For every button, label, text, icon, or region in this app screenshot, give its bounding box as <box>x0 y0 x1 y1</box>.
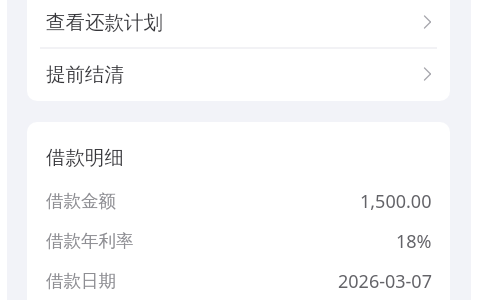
other: 查看还款计划 <box>423 15 431 29</box>
staticText: 提前结清 <box>46 62 124 87</box>
staticText: 借款金额 <box>46 190 116 212</box>
staticText: 18% <box>396 229 432 254</box>
other: 提前结清 <box>423 67 431 81</box>
staticText: 借款明细 <box>46 145 124 170</box>
button[interactable]: 提前结清 <box>27 49 450 99</box>
staticText: 2026-03-07 <box>338 269 432 294</box>
staticText: 1,500.00 <box>360 189 432 214</box>
staticText: 借款年利率 <box>46 230 134 252</box>
button[interactable]: 查看还款计划 <box>27 0 450 47</box>
staticText: 借款日期 <box>46 270 116 292</box>
staticText: 查看还款计划 <box>46 10 163 35</box>
